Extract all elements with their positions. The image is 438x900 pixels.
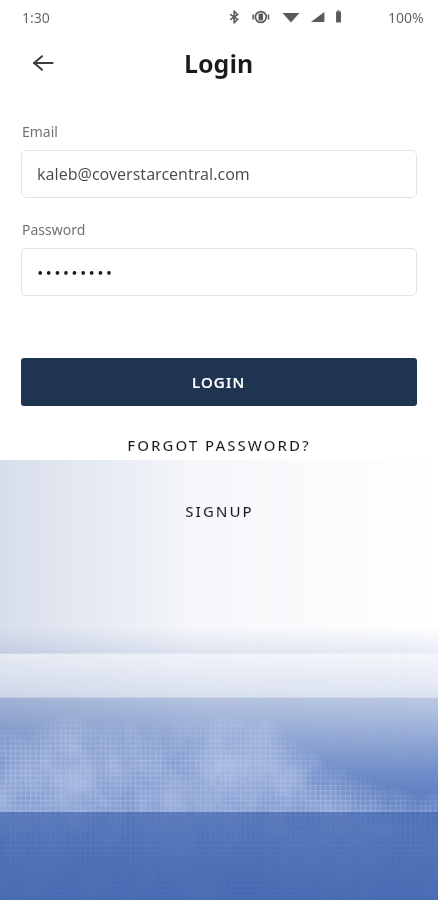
button[interactable]: •••••••••: [21, 248, 417, 296]
staticText: FORGOT PASSWORD?: [127, 435, 311, 455]
staticText: 1:30: [22, 8, 50, 27]
button[interactable]: Back: [20, 40, 66, 86]
staticText: LOGIN: [192, 372, 246, 392]
staticText: 100%: [388, 8, 424, 27]
button[interactable]: kaleb@coverstarcentral.com: [21, 150, 417, 198]
button[interactable]: FORGOT PASSWORD?: [0, 428, 438, 462]
staticText: Password: [22, 220, 86, 239]
staticText: Email: [22, 122, 58, 141]
staticText: •••••••••: [37, 261, 115, 284]
staticText: Login: [184, 46, 254, 80]
button[interactable]: LOGIN: [21, 358, 417, 406]
staticText: SIGNUP: [185, 501, 254, 521]
staticText: kaleb@coverstarcentral.com: [37, 163, 250, 185]
button[interactable]: SIGNUP: [0, 494, 438, 528]
